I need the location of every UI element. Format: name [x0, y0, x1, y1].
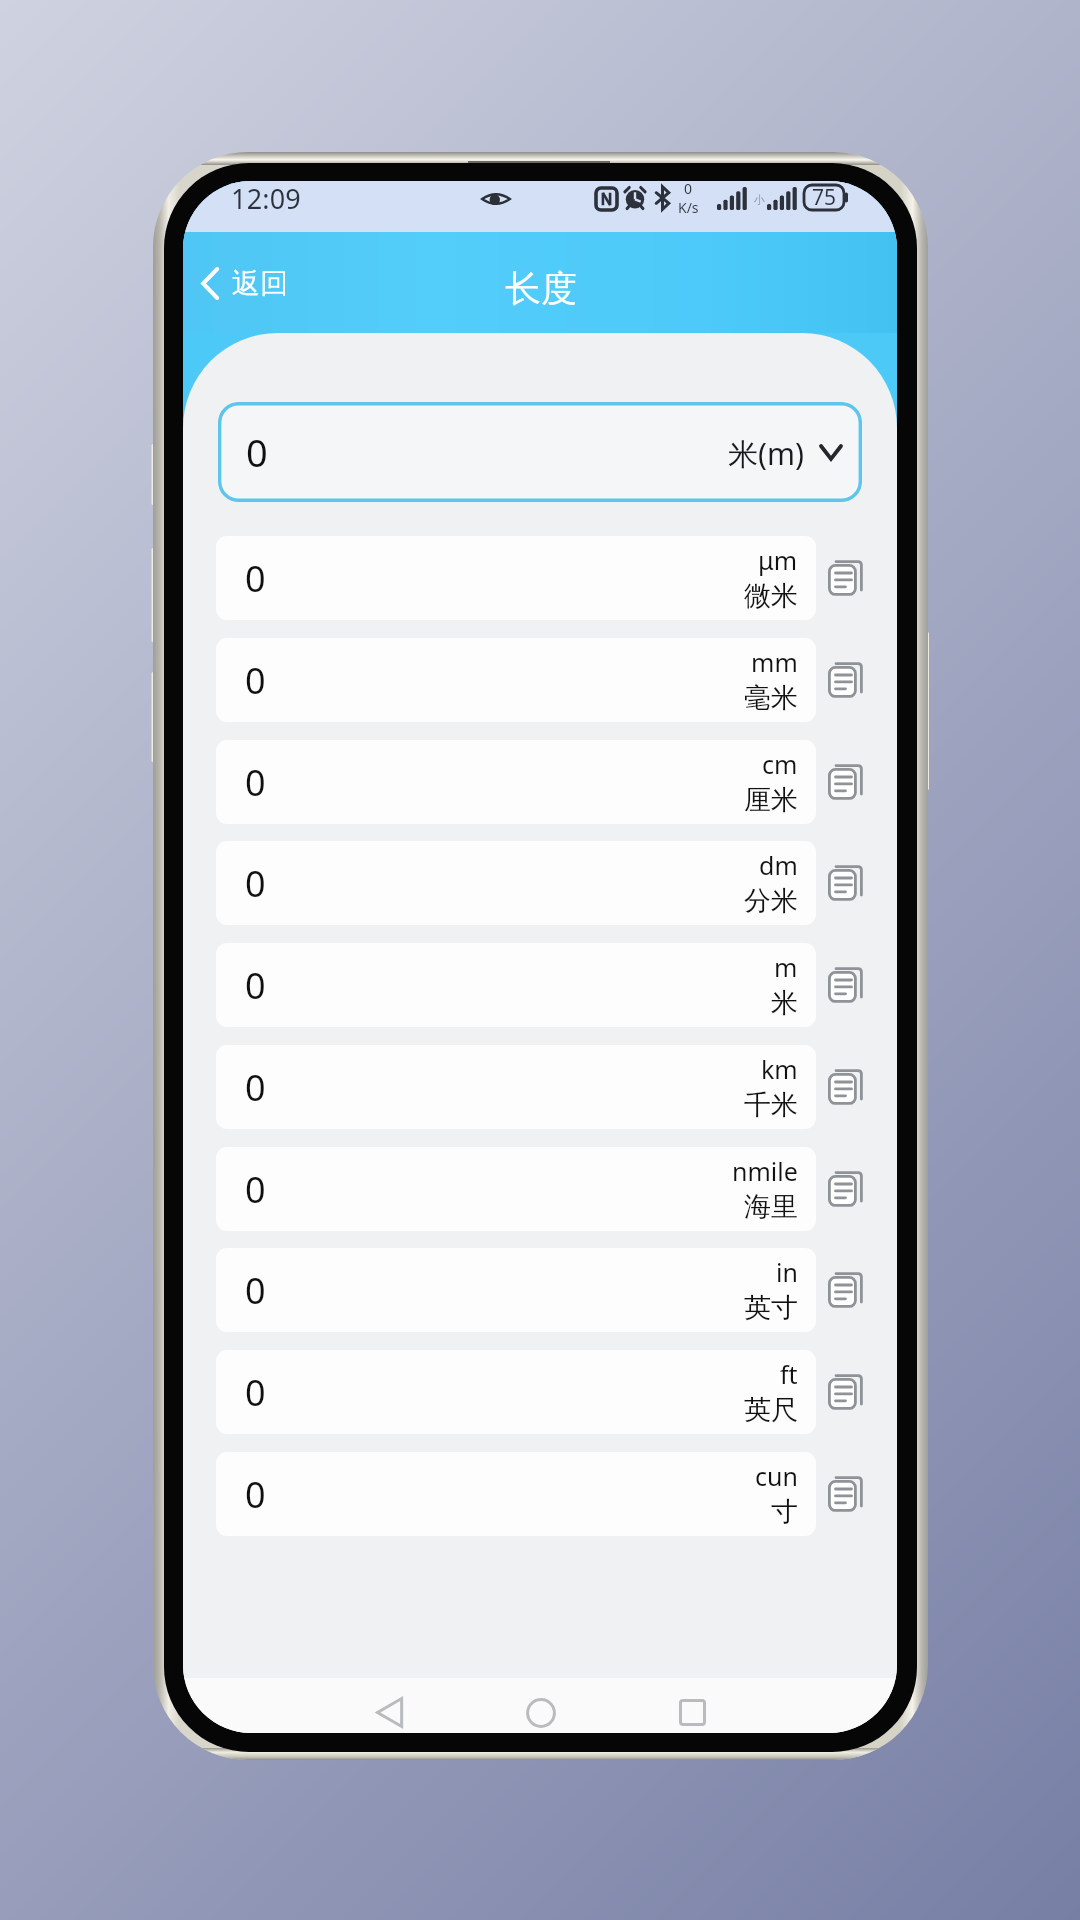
staticText: 米(m) — [728, 433, 805, 474]
button[interactable]: Home — [495, 1678, 587, 1733]
staticText: 0 — [245, 961, 266, 1010]
button[interactable]: Copy — [816, 943, 874, 1027]
staticText: 千米 — [744, 1088, 798, 1122]
button[interactable]: 0 — [218, 402, 862, 502]
staticText: 0 — [684, 181, 693, 198]
staticText: 12:09 — [231, 181, 302, 217]
button[interactable]: 0 — [216, 1147, 816, 1231]
button[interactable]: 0 — [216, 943, 816, 1027]
staticText: μm — [758, 543, 798, 577]
button[interactable]: 0 — [216, 638, 816, 722]
staticText: 厘米 — [744, 783, 798, 817]
staticText: 0 — [245, 859, 266, 908]
button[interactable]: 0 — [216, 740, 816, 824]
staticText: 0 — [245, 656, 266, 705]
button[interactable]: Copy — [816, 1045, 874, 1129]
staticText: nmile — [732, 1154, 798, 1188]
staticText: 米 — [771, 986, 798, 1020]
button[interactable]: Back — [343, 1678, 435, 1733]
staticText: km — [761, 1052, 798, 1086]
staticText: 小 — [754, 193, 765, 207]
staticText: in — [776, 1255, 798, 1289]
staticText: 长度 — [505, 266, 577, 311]
staticText: 0 — [245, 1368, 266, 1417]
button[interactable]: 0 — [216, 1248, 816, 1332]
button[interactable]: Copy — [816, 1452, 874, 1536]
staticText: 0 — [245, 1165, 266, 1214]
button[interactable]: 0 — [216, 536, 816, 620]
button[interactable]: 0 — [216, 1452, 816, 1536]
button[interactable]: Copy — [816, 1248, 874, 1332]
staticText: 0 — [245, 1470, 266, 1519]
staticText: cun — [755, 1459, 798, 1493]
button[interactable]: 0 — [216, 1350, 816, 1434]
staticText: 寸 — [771, 1495, 798, 1529]
staticText: 分米 — [744, 884, 798, 918]
staticText: 0 — [246, 426, 268, 478]
staticText: ft — [780, 1357, 798, 1391]
button[interactable]: 返回 — [201, 265, 288, 300]
button[interactable]: Copy — [816, 841, 874, 925]
staticText: 0 — [245, 1266, 266, 1315]
button[interactable]: Copy — [816, 536, 874, 620]
staticText: m — [774, 950, 798, 984]
staticText: mm — [751, 645, 798, 679]
staticText: 75 — [812, 183, 837, 212]
staticText: 英尺 — [744, 1393, 798, 1427]
staticText: 0 — [245, 1063, 266, 1112]
button[interactable]: Copy — [816, 1147, 874, 1231]
button[interactable]: Copy — [816, 638, 874, 722]
staticText: 0 — [245, 758, 266, 807]
staticText: 0 — [245, 554, 266, 603]
button[interactable]: 0 — [216, 1045, 816, 1129]
button[interactable]: Copy — [816, 1350, 874, 1434]
staticText: 英寸 — [744, 1291, 798, 1325]
staticText: 毫米 — [744, 681, 798, 715]
staticText: cm — [762, 747, 798, 781]
button[interactable]: Recents — [646, 1678, 738, 1733]
staticText: dm — [759, 848, 798, 882]
staticText: K/s — [678, 198, 699, 217]
button[interactable]: 0 — [216, 841, 816, 925]
staticText: 微米 — [744, 579, 798, 613]
staticText: 海里 — [744, 1190, 798, 1224]
button[interactable]: Copy — [816, 740, 874, 824]
staticText: 返回 — [232, 266, 288, 301]
